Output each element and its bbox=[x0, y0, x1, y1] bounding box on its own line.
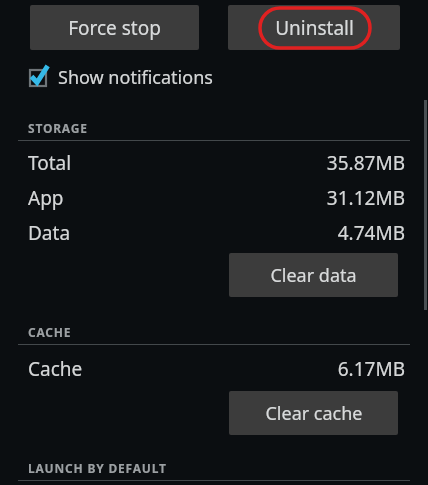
staticText: LAUNCH BY DEFAULT bbox=[28, 460, 167, 476]
button[interactable]: Total bbox=[0, 146, 428, 180]
button[interactable]: Clear data bbox=[229, 253, 398, 297]
button[interactable]: Cache bbox=[0, 352, 428, 386]
staticText: 35.87MB bbox=[326, 150, 405, 176]
staticText: Clear data bbox=[270, 263, 357, 288]
button[interactable]: Force stop bbox=[30, 5, 199, 50]
staticText: Cache bbox=[28, 356, 83, 382]
staticText: Data bbox=[28, 220, 71, 246]
button[interactable]: App bbox=[0, 181, 428, 215]
staticText: STORAGE bbox=[28, 120, 88, 136]
staticText: Uninstall bbox=[275, 15, 354, 41]
button[interactable]: Clear cache bbox=[229, 391, 398, 435]
staticText: Clear cache bbox=[265, 401, 363, 426]
staticText: Force stop bbox=[68, 15, 161, 41]
button[interactable]: Uninstall bbox=[228, 5, 400, 50]
staticText: CACHE bbox=[28, 324, 72, 340]
staticText: 31.12MB bbox=[326, 185, 405, 211]
button[interactable]: Data bbox=[0, 216, 428, 250]
staticText: 6.17MB bbox=[337, 356, 405, 382]
button[interactable]: Show notifications bbox=[22, 60, 252, 94]
staticText: App bbox=[28, 185, 64, 211]
staticText: 4.74MB bbox=[337, 220, 405, 246]
staticText: Show notifications bbox=[58, 65, 213, 90]
staticText: Total bbox=[28, 150, 72, 176]
